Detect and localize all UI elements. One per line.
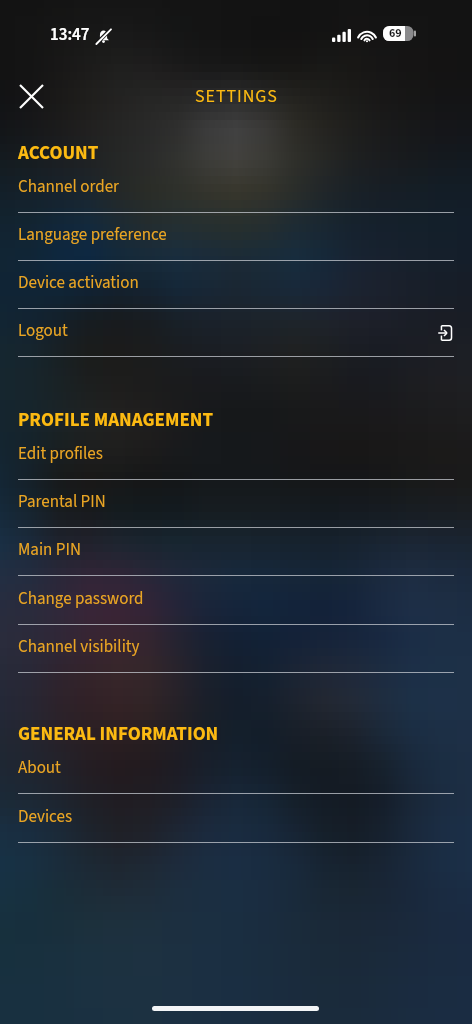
button[interactable]: Channel order: [0, 165, 472, 213]
staticText: Parental PIN: [18, 490, 106, 514]
staticText: 13:47: [50, 23, 90, 47]
button[interactable]: Close: [9, 74, 53, 118]
staticText: 69: [389, 25, 402, 42]
button[interactable]: Parental PIN: [0, 480, 472, 528]
button[interactable]: Language preference: [0, 213, 472, 261]
staticText: Edit profiles: [18, 442, 103, 466]
staticText: SETTINGS: [195, 84, 278, 110]
button[interactable]: Logout: [0, 309, 472, 357]
staticText: Device activation: [18, 271, 139, 295]
staticText: Devices: [18, 805, 73, 829]
staticText: Main PIN: [18, 538, 81, 562]
staticText: Language preference: [18, 223, 167, 247]
staticText: PROFILE MANAGEMENT: [18, 407, 214, 434]
button[interactable]: Change password: [0, 577, 472, 625]
button[interactable]: Devices: [0, 795, 472, 843]
staticText: ACCOUNT: [18, 140, 99, 167]
button[interactable]: Edit profiles: [0, 432, 472, 480]
staticText: Channel order: [18, 175, 119, 199]
staticText: Logout: [18, 319, 68, 343]
button[interactable]: Channel visibility: [0, 625, 472, 673]
button[interactable]: About: [0, 746, 472, 794]
staticText: Channel visibility: [18, 635, 140, 659]
staticText: About: [18, 756, 61, 780]
button[interactable]: Main PIN: [0, 528, 472, 576]
staticText: Change password: [18, 587, 144, 611]
button[interactable]: Device activation: [0, 261, 472, 309]
staticText: GENERAL INFORMATION: [18, 721, 219, 748]
